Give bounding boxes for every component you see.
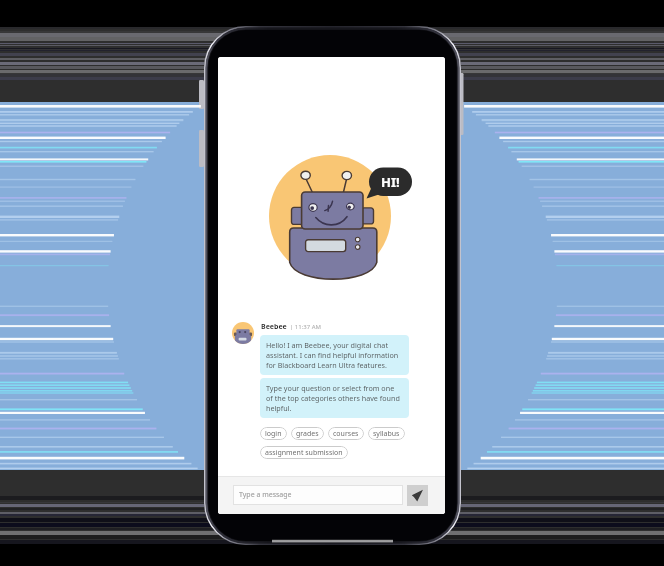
button[interactable]: syllabus — [368, 427, 405, 440]
staticText: courses — [333, 429, 359, 439]
staticText: login — [265, 429, 282, 439]
staticText: HI! — [381, 173, 400, 191]
button[interactable]: courses — [328, 427, 364, 440]
staticText: Hello! I am Beebee, your digital chat as… — [266, 340, 399, 370]
staticText: Type your question or select from one of… — [266, 383, 400, 413]
button[interactable]: Hello! I am Beebee, your digital chat as… — [260, 335, 409, 375]
button[interactable]: Send — [407, 485, 428, 506]
staticText: grades — [296, 429, 319, 439]
button[interactable]: login — [260, 427, 287, 440]
button[interactable]: Beebee avatar — [232, 322, 254, 344]
button[interactable]: Type your question or select from one of… — [260, 378, 409, 418]
staticText: Type a message — [239, 490, 292, 500]
staticText: assignment submission — [265, 448, 343, 458]
button[interactable]: Type a message — [233, 485, 403, 505]
staticText: | 11:37 AM — [290, 323, 322, 331]
button[interactable]: assignment submission — [260, 446, 348, 459]
staticText: Beebee — [261, 322, 287, 332]
button[interactable]: grades — [291, 427, 324, 440]
staticText: syllabus — [373, 429, 400, 439]
